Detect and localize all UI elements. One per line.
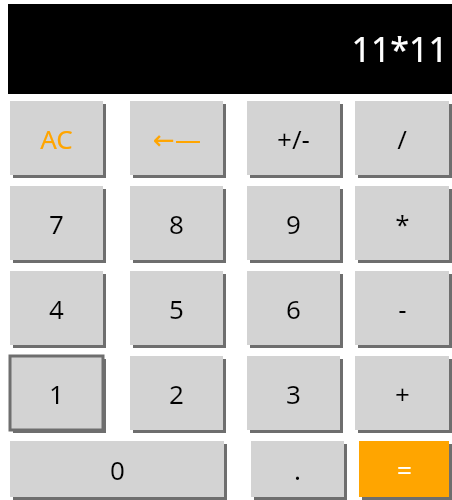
staticText: = [397, 452, 412, 487]
staticText: 11*11 [351, 26, 448, 72]
staticText: 7 [49, 206, 64, 241]
staticText: 3 [286, 376, 301, 411]
button[interactable]: 0 [10, 441, 227, 500]
button[interactable]: 7 [10, 186, 106, 263]
staticText: 9 [286, 206, 301, 241]
button[interactable]: 2 [130, 356, 226, 433]
button[interactable]: 1 [10, 356, 106, 433]
staticText: 1 [49, 376, 64, 411]
button[interactable]: = [359, 441, 452, 500]
staticText: AC [40, 121, 73, 156]
button[interactable]: 9 [247, 186, 343, 263]
staticText: + [395, 376, 410, 411]
staticText: ←— [153, 121, 201, 156]
button[interactable]: Backspace [130, 101, 226, 178]
staticText: +/- [277, 121, 310, 156]
button[interactable]: 5 [130, 271, 226, 348]
staticText: * [395, 206, 410, 241]
button[interactable]: 4 [10, 271, 106, 348]
staticText: 5 [169, 291, 184, 326]
button[interactable]: + [355, 356, 452, 433]
button[interactable]: 6 [247, 271, 343, 348]
staticText: 8 [169, 206, 184, 241]
staticText: / [397, 121, 407, 156]
button[interactable]: +/- [247, 101, 343, 178]
button[interactable]: 3 [247, 356, 343, 433]
button[interactable]: 8 [130, 186, 226, 263]
staticText: . [294, 452, 301, 487]
button[interactable]: . [251, 441, 347, 500]
button[interactable]: * [355, 186, 452, 263]
staticText: 4 [49, 291, 64, 326]
button[interactable]: / [355, 101, 452, 178]
staticText: 2 [169, 376, 184, 411]
button[interactable]: - [355, 271, 452, 348]
staticText: 0 [110, 452, 125, 487]
staticText: 6 [286, 291, 301, 326]
staticText: - [398, 291, 407, 326]
button[interactable]: AC [10, 101, 106, 178]
